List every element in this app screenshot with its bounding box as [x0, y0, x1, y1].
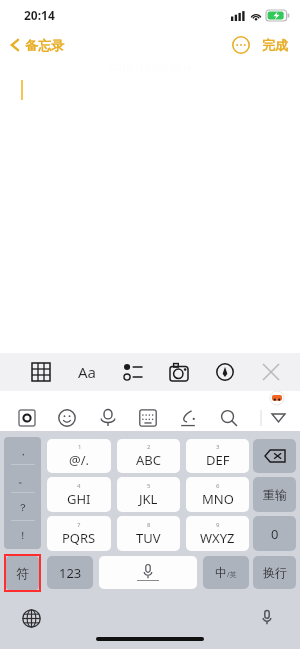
- staticText: 7: [77, 521, 81, 529]
- button[interactable]: 重输: [253, 477, 296, 512]
- button[interactable]: 1: [47, 439, 111, 473]
- staticText: 重输: [263, 487, 287, 502]
- staticText: JKL: [139, 490, 158, 508]
- staticText: ？: [18, 501, 28, 514]
- staticText: 1: [78, 443, 82, 451]
- staticText: ABC: [136, 451, 161, 469]
- staticText: PQRS: [62, 529, 96, 547]
- staticText: 符: [16, 565, 29, 581]
- button[interactable]: Checklist: [120, 359, 146, 385]
- button[interactable]: 完成: [262, 37, 288, 53]
- staticText: 3: [216, 443, 220, 451]
- button[interactable]: 。: [4, 465, 41, 493]
- button[interactable]: Assistant: [270, 391, 284, 405]
- button[interactable]: 6: [186, 477, 249, 512]
- button[interactable]: 换行: [253, 556, 296, 589]
- button[interactable]: Handwriting: [175, 405, 201, 431]
- staticText: 0: [271, 525, 279, 543]
- button[interactable]: Emoji: [54, 405, 80, 431]
- staticText: 4: [77, 482, 81, 490]
- button[interactable]: 2: [117, 439, 180, 473]
- button[interactable]: 8: [117, 516, 180, 551]
- button[interactable]: 9: [186, 516, 249, 551]
- button[interactable]: Back: [8, 35, 66, 55]
- button[interactable]: 7: [47, 516, 111, 551]
- staticText: 20:14: [24, 7, 55, 23]
- button[interactable]: Switch language: [20, 607, 42, 629]
- button[interactable]: Voice input: [95, 405, 121, 431]
- staticText: DEF: [206, 451, 230, 469]
- button[interactable]: ！: [4, 521, 41, 549]
- staticText: 123: [59, 564, 82, 582]
- staticText: 2: [147, 443, 151, 451]
- button[interactable]: ？: [4, 493, 41, 521]
- button[interactable]: Text format: [74, 359, 100, 385]
- other: Back: [10, 37, 20, 53]
- button[interactable]: More options: [232, 36, 250, 54]
- staticText: /英: [227, 570, 237, 580]
- button[interactable]: 4: [47, 477, 111, 512]
- staticText: 。: [18, 473, 28, 486]
- staticText: ！: [18, 529, 28, 542]
- button[interactable]: 符: [6, 556, 39, 590]
- button[interactable]: Search: [216, 405, 242, 431]
- staticText: 完成: [262, 37, 288, 53]
- button[interactable]: Markup: [212, 359, 238, 385]
- button[interactable]: 5: [117, 477, 180, 512]
- staticText: @/.: [69, 451, 90, 469]
- staticText: GHI: [67, 490, 91, 508]
- button[interactable]: Dictation: [256, 606, 278, 628]
- staticText: 6: [216, 482, 220, 490]
- staticText: 中: [215, 565, 227, 580]
- staticText: WXYZ: [200, 529, 235, 547]
- button[interactable]: 123: [47, 556, 93, 589]
- button[interactable]: Collapse: [256, 407, 290, 429]
- button[interactable]: Table: [28, 359, 54, 385]
- staticText: TUV: [136, 529, 161, 547]
- button[interactable]: 中: [203, 556, 249, 589]
- staticText: Aa: [78, 362, 97, 382]
- staticText: 换行: [263, 565, 287, 580]
- staticText: MNO: [202, 490, 234, 508]
- button[interactable]: Close: [258, 359, 284, 385]
- button[interactable]: ，: [4, 437, 41, 465]
- button[interactable]: Backspace: [253, 439, 296, 473]
- button[interactable]: 3: [186, 439, 249, 473]
- button[interactable]: Keyboard layout: [135, 405, 161, 431]
- button[interactable]: Camera: [166, 359, 192, 385]
- button[interactable]: Sogou input: [14, 405, 40, 431]
- staticText: ，: [18, 445, 28, 458]
- staticText: 备忘录: [25, 37, 64, 53]
- button[interactable]: Space, voice: [99, 556, 197, 589]
- button[interactable]: 0: [253, 516, 296, 551]
- staticText: 8: [147, 521, 151, 529]
- staticText: 5: [147, 482, 151, 490]
- staticText: 9: [216, 521, 220, 529]
